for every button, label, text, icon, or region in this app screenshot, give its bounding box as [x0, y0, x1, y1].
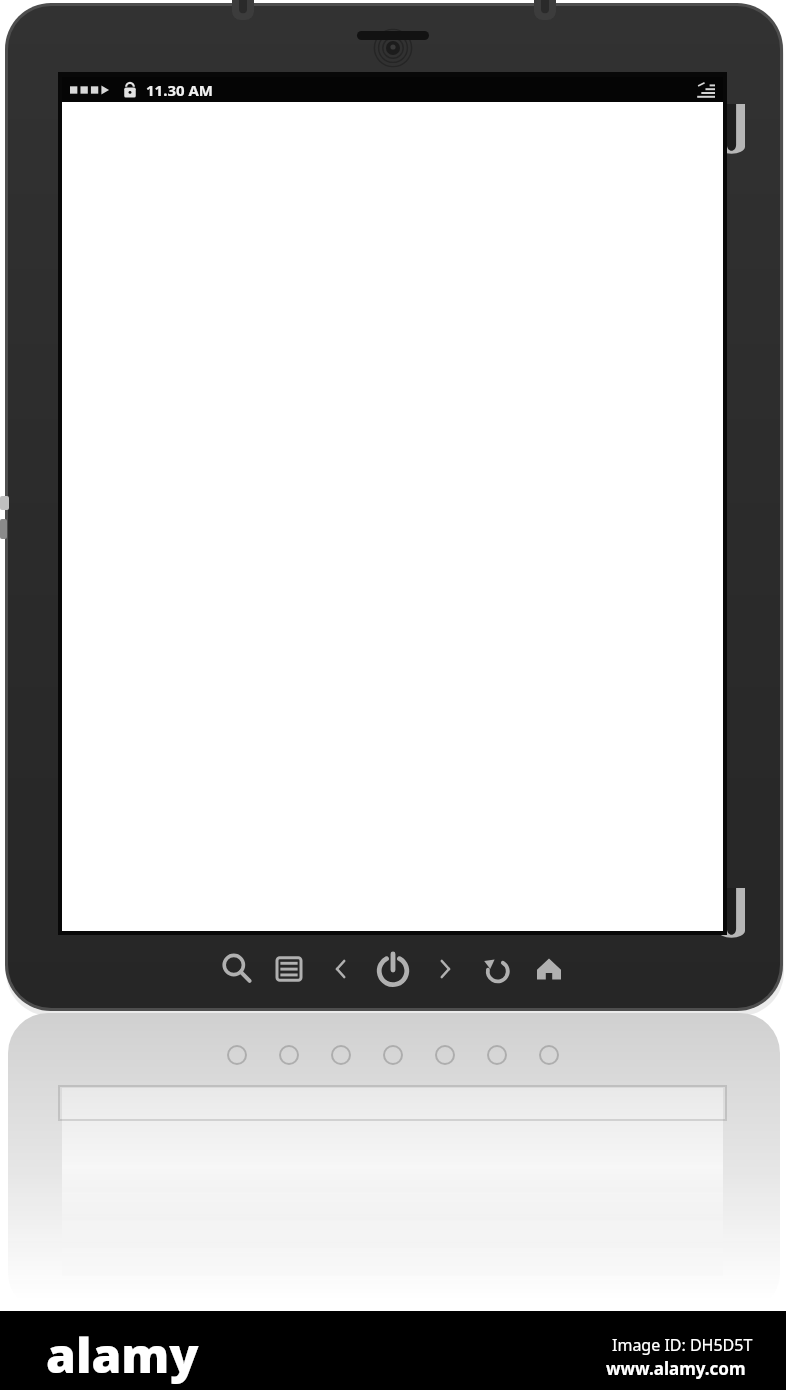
button[interactable]: Menu: [269, 949, 309, 989]
staticText: alamy: [46, 1322, 199, 1387]
staticText: Image ID: DH5D5T: [612, 1334, 753, 1356]
button[interactable]: Back: [477, 949, 517, 989]
button[interactable]: Screen locked: [122, 80, 138, 100]
staticText: 11.30 AM: [146, 80, 213, 100]
button[interactable]: Search: [217, 949, 257, 989]
button[interactable]: Power: [370, 946, 416, 992]
button[interactable]: Signal strength: [70, 82, 114, 98]
button[interactable]: Wi-Fi: [697, 80, 715, 100]
button[interactable]: Previous: [321, 949, 361, 989]
button[interactable]: Next: [425, 949, 465, 989]
button[interactable]: Home: [529, 949, 569, 989]
staticText: www.alamy.com: [606, 1357, 746, 1380]
